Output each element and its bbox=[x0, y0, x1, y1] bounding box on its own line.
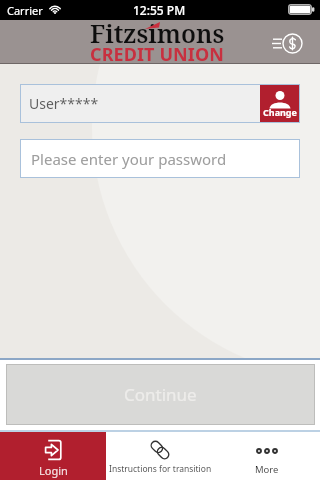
button[interactable]: Login bbox=[0, 432, 106, 480]
button[interactable]: User***** bbox=[20, 84, 300, 123]
button[interactable]: Continue bbox=[6, 364, 315, 425]
button[interactable]: Instructions for transition bbox=[106, 432, 214, 480]
button[interactable]: Please enter your password bbox=[20, 139, 300, 178]
staticText: Fitzsimons bbox=[90, 16, 225, 50]
staticText: Login bbox=[39, 463, 68, 478]
button[interactable]: More bbox=[214, 432, 320, 480]
staticText: User***** bbox=[29, 94, 99, 113]
staticText: CREDIT UNION bbox=[90, 42, 225, 67]
staticText: Instructions for transition bbox=[109, 463, 212, 475]
staticText: 12:55 PM bbox=[133, 2, 186, 18]
staticText: Please enter your password bbox=[31, 149, 227, 169]
button[interactable]: Quick balance bbox=[270, 32, 306, 68]
staticText: Change bbox=[263, 106, 297, 118]
button[interactable]: Change bbox=[260, 84, 300, 123]
staticText: Carrier bbox=[7, 3, 43, 18]
staticText: More bbox=[255, 463, 279, 476]
staticText: Continue bbox=[124, 383, 197, 406]
